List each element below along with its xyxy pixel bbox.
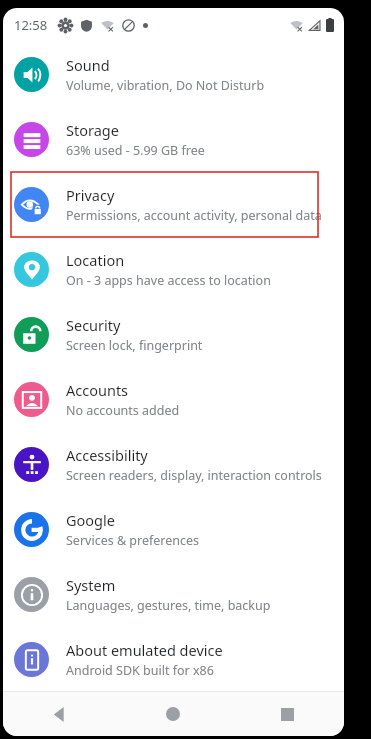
staticText: Location	[66, 250, 125, 270]
staticText: Accessibility	[66, 445, 148, 465]
button[interactable]: Location	[3, 237, 344, 302]
staticText: Languages, gestures, time, backup	[66, 597, 271, 614]
button[interactable]: About emulated device	[3, 627, 344, 691]
button[interactable]: Home	[116, 692, 230, 736]
button[interactable]: Sound	[3, 42, 344, 107]
staticText: Android SDK built for x86	[66, 662, 214, 679]
button[interactable]: System	[3, 562, 344, 627]
staticText: No accounts added	[66, 402, 180, 419]
staticText: Permissions, account activity, personal …	[66, 207, 322, 224]
button[interactable]: Privacy	[3, 172, 344, 237]
button[interactable]: Accounts	[3, 367, 344, 432]
staticText: Services & preferences	[66, 532, 200, 549]
staticText: Screen lock, fingerprint	[66, 337, 203, 354]
button[interactable]: Accessibility	[3, 432, 344, 497]
button[interactable]: Security	[3, 302, 344, 367]
staticText: System	[66, 575, 116, 595]
staticText: Google	[66, 510, 115, 530]
button[interactable]: Storage	[3, 107, 344, 172]
staticText: 63% used - 5.99 GB free	[66, 142, 205, 159]
staticText: About emulated device	[66, 640, 223, 660]
button[interactable]: Back	[3, 692, 116, 736]
button[interactable]: Google	[3, 497, 344, 562]
staticText: 12:58	[14, 16, 48, 34]
staticText: On - 3 apps have access to location	[66, 272, 271, 289]
staticText: Sound	[66, 55, 110, 75]
staticText: Security	[66, 315, 121, 335]
staticText: Privacy	[66, 185, 115, 205]
button[interactable]: Recent apps	[230, 692, 344, 736]
staticText: Storage	[66, 120, 119, 140]
staticText: Volume, vibration, Do Not Disturb	[66, 77, 265, 94]
staticText: Accounts	[66, 380, 129, 400]
staticText: Screen readers, display, interaction con…	[66, 467, 322, 484]
